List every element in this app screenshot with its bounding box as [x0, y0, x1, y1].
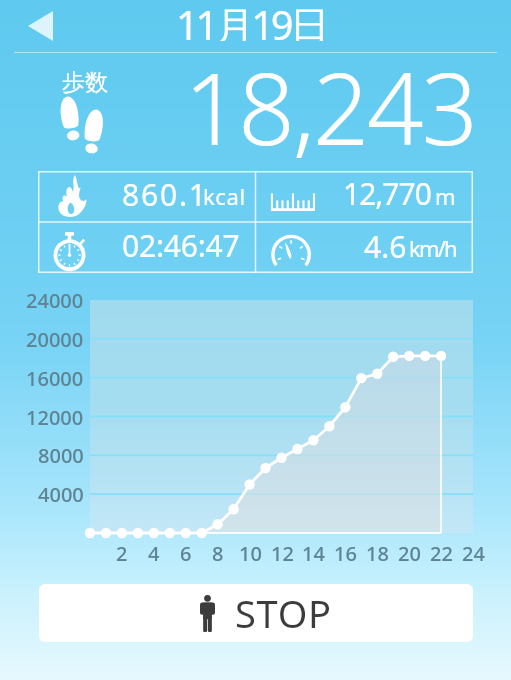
staticText: 20000: [26, 326, 84, 353]
staticText: 14: [302, 540, 325, 567]
staticText: STOP: [235, 587, 332, 639]
button[interactable]: m: [255, 171, 473, 212]
staticText: 18: [366, 540, 389, 567]
staticText: 8: [212, 540, 224, 567]
staticText: 4: [148, 540, 160, 567]
staticText: 2: [116, 540, 128, 567]
staticText: 4.6: [364, 226, 407, 267]
staticText: 8000: [38, 442, 84, 469]
button[interactable]: kcal: [38, 171, 255, 213]
staticText: 24: [462, 540, 485, 567]
button[interactable]: km/h: [255, 222, 473, 266]
staticText: 6: [180, 540, 192, 567]
staticText: 12: [271, 540, 294, 567]
staticText: 20: [398, 540, 421, 567]
button[interactable]: Back: [13, 0, 67, 52]
staticText: kcal: [203, 181, 246, 211]
staticText: 4000: [38, 481, 84, 508]
button[interactable]: 02:46:47: [38, 222, 255, 264]
staticText: 16: [334, 540, 357, 567]
staticText: 10: [239, 540, 262, 567]
staticText: m: [435, 181, 457, 211]
staticText: 22: [430, 540, 453, 567]
staticText: 12,770: [343, 173, 431, 214]
staticText: 18,243: [184, 39, 476, 174]
staticText: 24000: [26, 287, 84, 314]
staticText: 16000: [26, 365, 84, 392]
staticText: 860.1: [122, 174, 208, 215]
staticText: km/h: [409, 233, 456, 263]
staticText: 12000: [26, 404, 84, 431]
button[interactable]: STOP: [39, 584, 473, 642]
staticText: 02:46:47: [122, 225, 240, 266]
staticText: 11月19日: [176, 0, 327, 41]
staticText: 歩数: [62, 68, 108, 97]
